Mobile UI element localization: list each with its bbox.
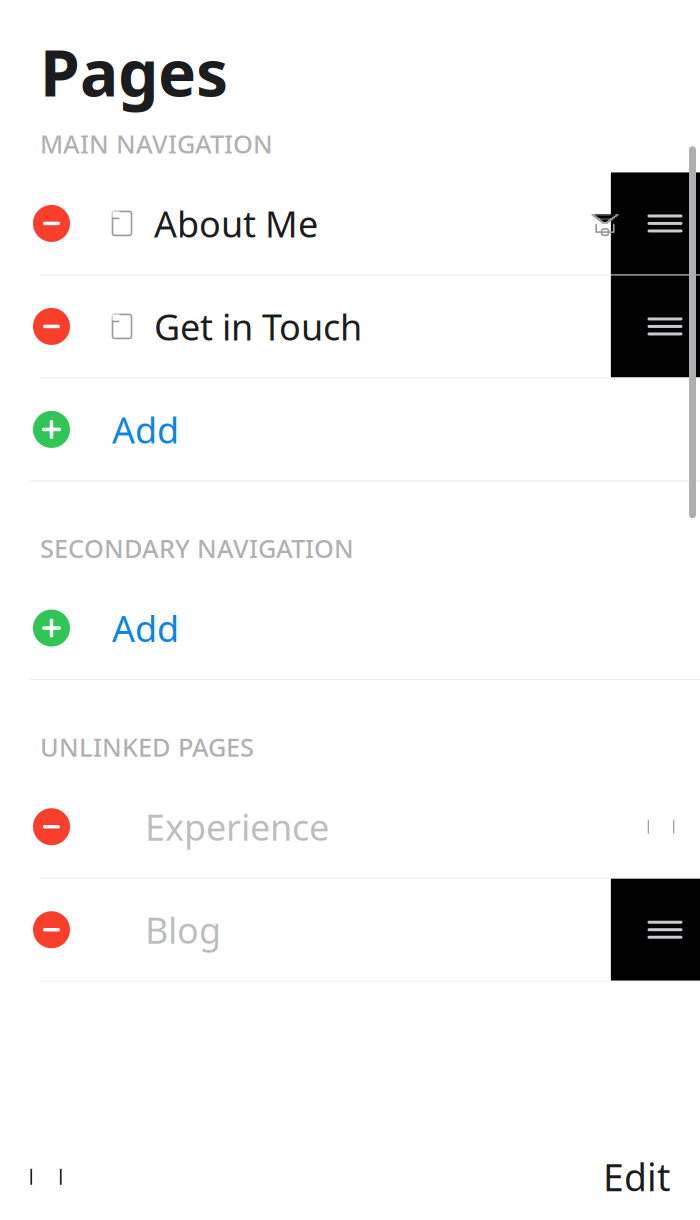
button[interactable]: About Me [0, 172, 700, 274]
staticText: Get in Touch [154, 302, 362, 350]
staticText: Pages [40, 29, 228, 114]
button[interactable]: Experience [0, 776, 700, 878]
button[interactable]: Blog [0, 879, 700, 981]
staticText: Add [112, 405, 179, 453]
button[interactable]: Add [0, 378, 700, 480]
staticText: MAIN NAVIGATION [40, 127, 273, 160]
staticText: Experience [145, 803, 329, 851]
staticText: SECONDARY NAVIGATION [40, 531, 354, 565]
button[interactable]: Collapse [0, 1144, 92, 1210]
staticText: Add [112, 604, 179, 652]
staticText: Edit [603, 1152, 670, 1202]
button[interactable]: Edit [603, 1132, 700, 1220]
staticText: UNLINKED PAGES [40, 730, 254, 764]
button[interactable]: Add [0, 577, 700, 679]
staticText: Blog [145, 906, 221, 954]
staticText: About Me [154, 199, 318, 247]
button[interactable]: Get in Touch [0, 275, 700, 377]
